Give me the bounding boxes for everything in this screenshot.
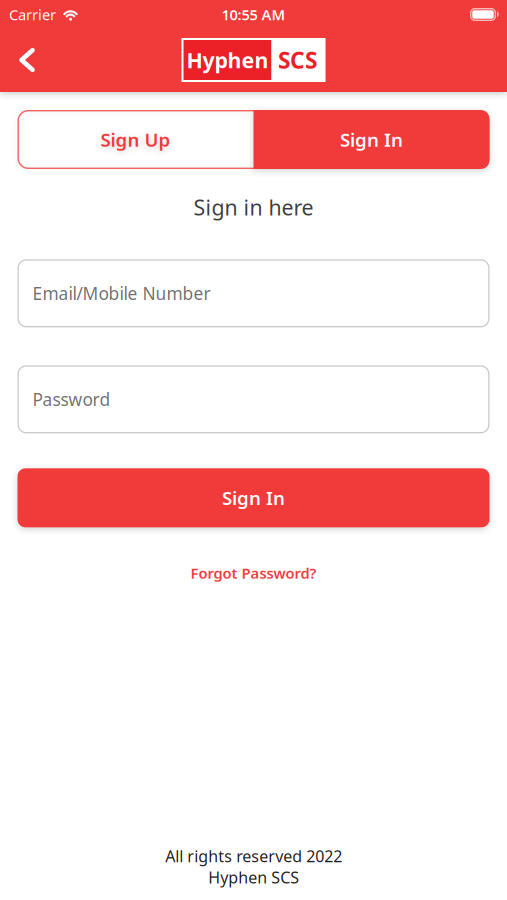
button[interactable]: Forgot Password? — [186, 559, 320, 587]
staticText: 10:55 AM — [221, 5, 285, 24]
staticText: Sign In — [222, 485, 285, 510]
button[interactable]: Sign In — [253, 110, 489, 169]
button[interactable]: Sign Up — [17, 110, 253, 169]
staticText: Hyphen — [186, 46, 268, 74]
button[interactable]: Back — [0, 38, 35, 82]
staticText: Sign In — [340, 127, 403, 152]
staticText: Forgot Password? — [190, 563, 316, 583]
staticText: SCS — [278, 45, 317, 75]
staticText: Email/Mobile Number — [32, 282, 210, 305]
staticText: Sign in here — [193, 193, 313, 221]
button[interactable]: Sign In — [17, 468, 489, 527]
staticText: All rights reserved 2022 Hyphen SCS — [165, 845, 342, 888]
staticText: Sign Up — [100, 127, 170, 152]
staticText: Password — [32, 388, 110, 411]
staticText: Carrier — [9, 5, 56, 24]
